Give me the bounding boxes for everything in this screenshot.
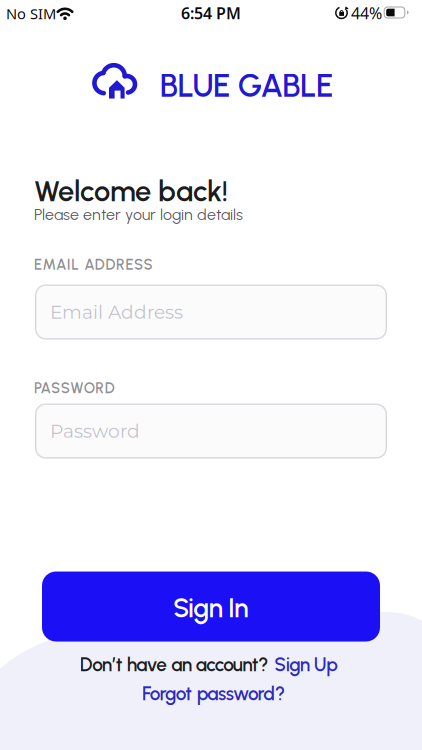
staticText: Email Address: [50, 301, 183, 323]
staticText: Sign In: [173, 592, 249, 624]
staticText: EMAIL ADDRESS: [34, 256, 153, 273]
button[interactable]: Sign In: [42, 571, 380, 641]
staticText: No SIM: [6, 4, 56, 23]
staticText: Welcome back!: [34, 174, 228, 208]
staticText: Please enter your login details: [34, 205, 243, 224]
staticText: 44%: [351, 2, 382, 24]
staticText: 6:54 PM: [181, 2, 241, 24]
staticText: BLUE GABLE: [160, 66, 333, 105]
staticText: Forgot password?: [142, 682, 285, 705]
staticText: Don’t have an account?: [80, 653, 268, 676]
staticText: PASSWORD: [34, 379, 115, 397]
button[interactable]: Forgot password?: [142, 682, 285, 705]
button[interactable]: Password: [35, 403, 387, 458]
staticText: Sign Up: [274, 653, 338, 676]
staticText: Password: [50, 420, 140, 442]
button[interactable]: Email Address: [35, 284, 387, 339]
button[interactable]: Sign Up: [274, 653, 338, 676]
